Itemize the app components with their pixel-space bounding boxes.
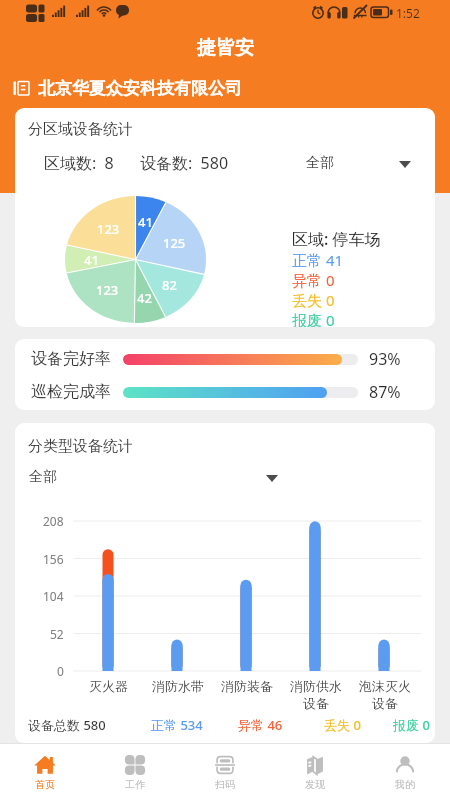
staticText: 87% xyxy=(369,381,401,403)
staticText: 灭火器 xyxy=(89,678,128,694)
staticText: 104 xyxy=(43,588,64,604)
staticText: 丢失 0 xyxy=(292,290,335,310)
staticText: 123 xyxy=(97,220,120,238)
staticText: 首页 xyxy=(35,778,55,791)
staticText: 消防供水 设备 xyxy=(290,678,342,712)
button[interactable]: 发现 xyxy=(270,744,360,800)
staticText: 82 xyxy=(162,276,177,294)
staticText: 41 xyxy=(138,213,153,231)
staticText: 发现 xyxy=(305,778,325,791)
staticText: 区域数: 8 xyxy=(44,152,114,174)
staticText: 正常 41 xyxy=(292,250,344,270)
staticText: 42 xyxy=(137,289,152,307)
staticText: 我的 xyxy=(395,778,415,791)
staticText: 设备总数 580 xyxy=(28,716,106,734)
staticText: 分类型设备统计 xyxy=(28,437,133,456)
staticText: 工作 xyxy=(125,778,145,791)
staticText: 泡沫灭火 设备 xyxy=(359,678,411,712)
staticText: 异常 0 xyxy=(292,270,335,290)
staticText: 1:52 xyxy=(396,5,420,21)
staticText: 123 xyxy=(96,281,119,299)
button[interactable]: 北京华夏众安科技有限公司 xyxy=(0,70,450,106)
staticText: 消防装备 xyxy=(221,678,273,694)
button[interactable]: 工作 xyxy=(90,744,180,800)
staticText: 208 xyxy=(43,513,64,529)
button[interactable]: 全部 xyxy=(306,152,411,174)
staticText: 正常 534 xyxy=(151,716,203,734)
button[interactable]: 首页 xyxy=(0,744,90,800)
staticText: 41 xyxy=(84,251,99,269)
staticText: 报废 0 xyxy=(393,716,430,734)
staticText: 报废 0 xyxy=(292,310,335,327)
staticText: 丢失 0 xyxy=(324,716,361,734)
staticText: 区域: 停车场 xyxy=(292,228,381,250)
button[interactable]: 全部 xyxy=(29,466,278,488)
staticText: 0 xyxy=(57,663,64,679)
staticText: 156 xyxy=(43,551,64,567)
staticText: 设备完好率 xyxy=(31,349,111,369)
staticText: 扫码 xyxy=(215,778,235,791)
staticText: 全部 xyxy=(306,154,334,172)
staticText: 93% xyxy=(369,348,401,370)
staticText: 异常 46 xyxy=(238,716,283,734)
staticText: 分区域设备统计 xyxy=(28,120,133,139)
button[interactable]: 我的 xyxy=(360,744,450,800)
staticText: 巡检完成率 xyxy=(31,382,111,402)
staticText: 125 xyxy=(163,234,186,252)
button[interactable]: 扫码 xyxy=(180,744,270,800)
staticText: 捷皆安 xyxy=(197,36,254,60)
staticText: 北京华夏众安科技有限公司 xyxy=(38,78,242,99)
staticText: 设备数: 580 xyxy=(140,152,229,174)
staticText: 全部 xyxy=(29,468,57,486)
staticText: 消防水带 xyxy=(152,678,204,694)
staticText: 52 xyxy=(50,626,64,642)
